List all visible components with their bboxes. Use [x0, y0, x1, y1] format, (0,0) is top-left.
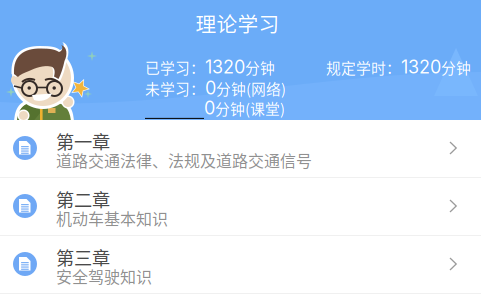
staticText: 分钟 [441, 56, 471, 78]
staticText: 理论学习 [195, 8, 279, 38]
button[interactable]: 第二章 [0, 178, 481, 235]
staticText: 第二章 [56, 186, 110, 212]
staticText: 规定学时： [326, 56, 401, 78]
staticText: 分钟(课堂) [215, 97, 285, 119]
staticText: 0 [205, 77, 216, 99]
staticText: 已学习： [145, 56, 205, 78]
staticText: 未学习： [145, 77, 205, 99]
button[interactable]: 第一章 [0, 120, 481, 177]
staticText: 分钟 [245, 56, 275, 78]
staticText: 机动车基本知识 [56, 206, 168, 230]
staticText: 0 [204, 97, 215, 119]
staticText: 安全驾驶知识 [56, 264, 152, 288]
staticText: 1320 [401, 56, 441, 78]
staticText: 道路交通法律、法规及道路交通信号 [56, 148, 312, 172]
staticText: 第一章 [56, 128, 110, 154]
button[interactable]: 第三章 [0, 236, 481, 293]
staticText: 1320 [205, 56, 245, 78]
staticText: 分钟(网络) [216, 77, 286, 99]
staticText: 第三章 [56, 244, 110, 270]
